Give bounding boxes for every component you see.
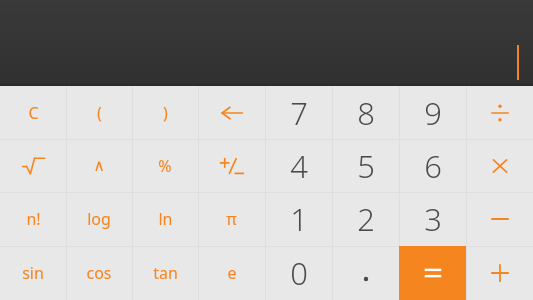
button[interactable]: ( bbox=[66, 86, 132, 139]
button[interactable]: sin bbox=[0, 246, 66, 300]
button[interactable]: 5 bbox=[332, 139, 399, 192]
button[interactable]: 1 bbox=[265, 192, 332, 246]
button[interactable]: 0 bbox=[265, 246, 332, 300]
staticText: 0 bbox=[290, 252, 308, 294]
staticText: 2 bbox=[357, 198, 375, 240]
staticText: ln bbox=[158, 208, 173, 230]
staticText: C bbox=[28, 102, 39, 124]
staticText: ∧ bbox=[93, 156, 105, 175]
button[interactable]: ∧ bbox=[66, 139, 132, 192]
button[interactable]: ln bbox=[132, 192, 198, 246]
button[interactable]: e bbox=[198, 246, 265, 300]
staticText: 4 bbox=[290, 145, 308, 187]
button[interactable]: ) bbox=[132, 86, 198, 139]
button[interactable]: Plus bbox=[466, 246, 533, 300]
button[interactable]: 3 bbox=[399, 192, 466, 246]
staticText: 5 bbox=[357, 145, 375, 187]
button[interactable]: tan bbox=[132, 246, 198, 300]
staticText: sin bbox=[22, 262, 44, 284]
staticText: e bbox=[227, 262, 237, 284]
button[interactable]: 7 bbox=[265, 86, 332, 139]
staticText: π bbox=[226, 208, 237, 230]
staticText: ( bbox=[97, 102, 102, 124]
staticText: n! bbox=[26, 208, 41, 230]
button[interactable]: log bbox=[66, 192, 132, 246]
button[interactable]: C bbox=[0, 86, 66, 139]
button[interactable]: Minus bbox=[466, 192, 533, 246]
button[interactable]: Divide bbox=[466, 86, 533, 139]
button[interactable]: 8 bbox=[332, 86, 399, 139]
button[interactable]: Square root bbox=[0, 139, 66, 192]
button[interactable]: Multiply bbox=[466, 139, 533, 192]
staticText: log bbox=[87, 208, 111, 230]
button[interactable]: 4 bbox=[265, 139, 332, 192]
staticText: 3 bbox=[424, 198, 442, 240]
staticText: 6 bbox=[424, 145, 442, 187]
button[interactable]: π bbox=[198, 192, 265, 246]
staticText: 8 bbox=[357, 92, 375, 134]
button[interactable]: 2 bbox=[332, 192, 399, 246]
staticText: 1 bbox=[290, 198, 308, 240]
button[interactable]: Plus minus bbox=[198, 139, 265, 192]
staticText: 7 bbox=[290, 92, 308, 134]
button[interactable]: 9 bbox=[399, 86, 466, 139]
staticText: cos bbox=[86, 262, 112, 284]
staticText: 9 bbox=[424, 92, 442, 134]
button[interactable]: cos bbox=[66, 246, 132, 300]
button[interactable]: % bbox=[132, 139, 198, 192]
button[interactable]: Backspace bbox=[198, 86, 265, 139]
button[interactable]: n! bbox=[0, 192, 66, 246]
staticText: % bbox=[158, 155, 172, 177]
staticText: ) bbox=[163, 102, 168, 124]
staticText: tan bbox=[153, 262, 178, 284]
button[interactable]: Decimal point bbox=[332, 246, 399, 300]
button[interactable]: 6 bbox=[399, 139, 466, 192]
button[interactable]: Equals bbox=[399, 246, 466, 300]
